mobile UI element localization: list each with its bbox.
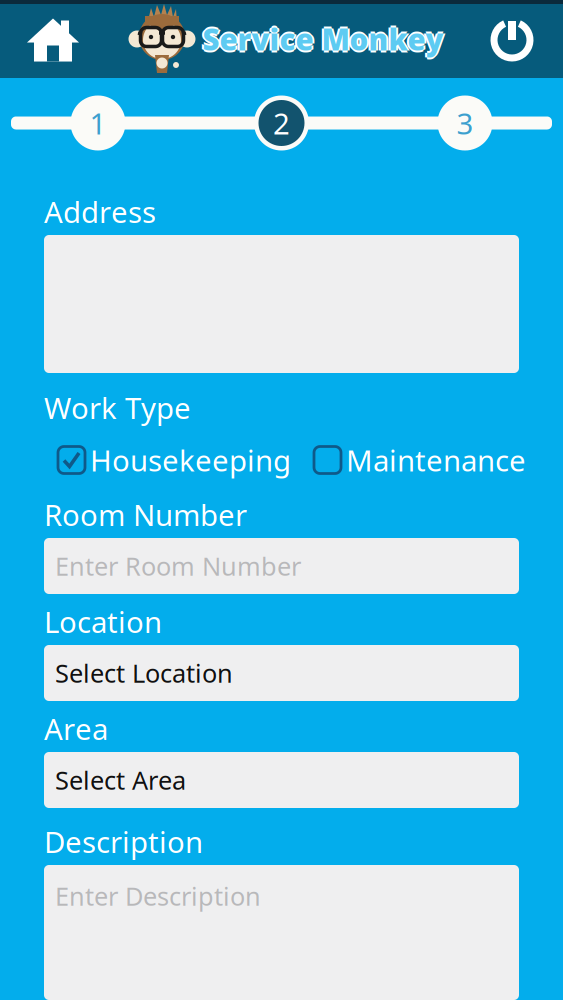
button[interactable]: Home <box>0 0 106 78</box>
staticText: Enter Description <box>55 879 261 913</box>
staticText: Select Area <box>55 763 186 797</box>
button[interactable]: Housekeeping <box>58 440 291 479</box>
staticText: Service Monkey <box>202 19 443 58</box>
staticText: 1 <box>89 103 106 142</box>
staticText: Service Monkey <box>202 17 443 56</box>
staticText: 3 <box>456 103 473 142</box>
button[interactable]: Select Location <box>44 645 519 701</box>
staticText: Room Number <box>44 495 247 534</box>
button[interactable]: Maintenance <box>314 440 526 479</box>
staticText: Enter Room Number <box>55 549 301 583</box>
button[interactable]: Address <box>44 235 519 373</box>
button[interactable]: Log out <box>472 0 552 78</box>
staticText: Service Monkey <box>202 21 443 60</box>
button[interactable]: Select Area <box>44 752 519 808</box>
staticText: Select Location <box>55 656 233 690</box>
button[interactable]: Enter Description <box>44 865 519 1000</box>
button[interactable]: Step 2, current <box>253 95 309 151</box>
staticText: Work Type <box>44 388 191 427</box>
staticText: Location <box>44 602 162 641</box>
button[interactable]: Step 1 <box>70 95 126 151</box>
staticText: Housekeeping <box>90 440 291 479</box>
button[interactable]: Enter Room Number <box>44 538 519 594</box>
staticText: Address <box>44 192 156 231</box>
button[interactable]: Step 3 <box>437 95 493 151</box>
staticText: Description <box>44 822 203 861</box>
staticText: Service Monkey <box>204 19 445 58</box>
staticText: 2 <box>273 103 290 142</box>
staticText: Service Monkey <box>200 19 441 58</box>
staticText: Maintenance <box>346 440 526 479</box>
staticText: Area <box>44 709 108 748</box>
